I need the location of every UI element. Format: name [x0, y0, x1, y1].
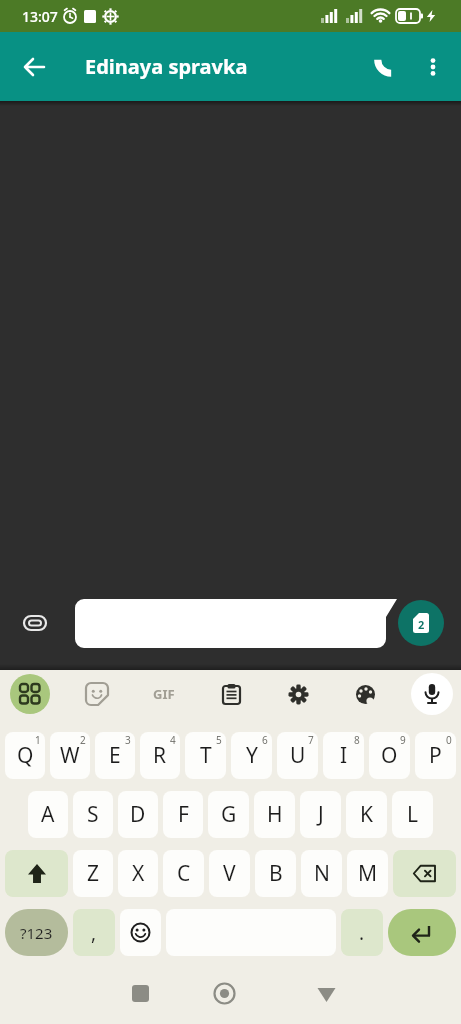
button[interactable] — [131, 984, 149, 1002]
staticText: K — [360, 800, 373, 829]
button[interactable]: B — [255, 850, 296, 897]
button[interactable] — [316, 984, 336, 1004]
staticText: X — [132, 859, 145, 888]
button[interactable]: A — [28, 791, 68, 838]
staticText: 3 — [125, 733, 131, 747]
button[interactable]: V — [209, 850, 250, 897]
staticText: G — [221, 800, 237, 829]
button[interactable]: ?123 — [5, 909, 68, 956]
staticText: A — [41, 800, 55, 829]
button[interactable] — [357, 41, 409, 93]
button[interactable]: X — [118, 850, 158, 897]
button[interactable]: T — [185, 732, 226, 779]
button[interactable]: Q — [5, 732, 45, 779]
button[interactable]: W — [50, 732, 90, 779]
staticText: C — [177, 859, 191, 888]
button[interactable]: M — [347, 850, 388, 897]
button[interactable]: G — [208, 791, 249, 838]
staticText: F — [178, 800, 189, 829]
button[interactable]: J — [300, 791, 341, 838]
button[interactable]: Z — [73, 850, 113, 897]
button[interactable] — [213, 982, 235, 1004]
button[interactable]: L — [392, 791, 433, 838]
button[interactable] — [393, 850, 456, 897]
staticText: Edinaya spravka — [85, 53, 248, 80]
button[interactable]: I — [323, 732, 364, 779]
staticText: 13:07 — [22, 7, 58, 26]
button[interactable] — [409, 43, 457, 91]
button[interactable]: . — [341, 909, 383, 956]
button[interactable]: S — [73, 791, 113, 838]
staticText: 1 — [35, 733, 41, 747]
button[interactable] — [120, 909, 161, 956]
button[interactable]: H — [254, 791, 295, 838]
staticText: Y — [246, 741, 258, 770]
button[interactable] — [345, 674, 385, 714]
staticText: N — [314, 859, 330, 888]
staticText: Q — [17, 741, 34, 770]
button[interactable] — [14, 601, 58, 645]
button[interactable]: P — [415, 732, 456, 779]
staticText: Z — [87, 859, 100, 888]
staticText: 8 — [354, 733, 360, 747]
button[interactable]: 2 — [398, 600, 444, 646]
staticText: U — [290, 741, 306, 770]
staticText: S — [87, 800, 99, 829]
button[interactable] — [10, 674, 50, 714]
button[interactable] — [211, 674, 251, 714]
staticText: T — [200, 741, 212, 770]
staticText: , — [91, 920, 97, 946]
staticText: M — [358, 859, 378, 888]
button[interactable]: E — [95, 732, 135, 779]
button[interactable]: K — [346, 791, 387, 838]
button[interactable] — [8, 41, 60, 93]
staticText: D — [130, 800, 146, 829]
button[interactable]: , — [73, 909, 115, 956]
button[interactable] — [75, 599, 397, 648]
button[interactable]: O — [369, 732, 410, 779]
staticText: V — [223, 859, 236, 888]
staticText: H — [267, 800, 283, 829]
staticText: E — [109, 741, 121, 770]
button[interactable]: F — [163, 791, 203, 838]
staticText: 2 — [418, 617, 425, 632]
staticText: 4 — [170, 733, 176, 747]
staticText: J — [318, 800, 324, 829]
staticText: GIF — [153, 685, 175, 703]
button[interactable]: R — [140, 732, 180, 779]
button[interactable]: C — [163, 850, 204, 897]
button[interactable]: GIF — [144, 674, 184, 714]
staticText: . — [359, 920, 365, 946]
staticText: 2 — [80, 733, 86, 747]
staticText: 5 — [216, 733, 222, 747]
staticText: I — [340, 741, 348, 770]
button[interactable]: N — [301, 850, 342, 897]
staticText: L — [407, 800, 419, 829]
button[interactable]: D — [118, 791, 158, 838]
staticText: R — [153, 741, 167, 770]
staticText: ?123 — [20, 923, 53, 943]
button[interactable] — [411, 673, 453, 715]
staticText: 0 — [446, 733, 452, 747]
button[interactable] — [77, 674, 117, 714]
staticText: W — [60, 741, 80, 770]
staticText: 6 — [262, 733, 268, 747]
staticText: O — [381, 741, 398, 770]
button[interactable]: Y — [231, 732, 272, 779]
staticText: 9 — [400, 733, 406, 747]
button[interactable] — [5, 850, 68, 897]
staticText: 7 — [308, 733, 314, 747]
button[interactable] — [388, 909, 456, 956]
staticText: P — [429, 741, 442, 770]
button[interactable] — [278, 674, 318, 714]
button[interactable]: U — [277, 732, 318, 779]
staticText: B — [269, 859, 283, 888]
